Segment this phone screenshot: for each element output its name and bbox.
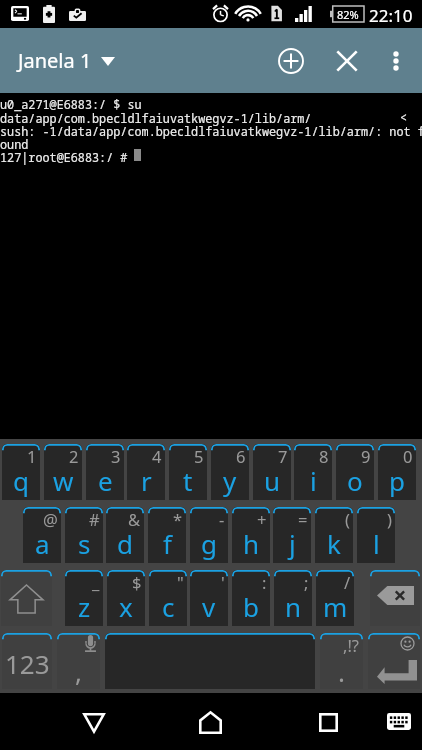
staticText: 22:10 xyxy=(369,4,413,27)
staticText: 1 xyxy=(27,445,37,467)
staticText: p xyxy=(389,463,405,498)
button[interactable]: d xyxy=(106,507,144,563)
staticText: ' xyxy=(221,571,225,593)
staticText: : xyxy=(262,571,267,593)
button[interactable]: y xyxy=(211,444,249,500)
staticText: 6 xyxy=(236,445,246,467)
button[interactable] xyxy=(370,570,420,626)
button[interactable]: w xyxy=(44,444,82,500)
button[interactable]: m xyxy=(316,570,354,626)
button[interactable]: Recents xyxy=(300,693,357,750)
button[interactable]: t xyxy=(169,444,207,500)
button[interactable]: Close window xyxy=(323,28,371,93)
staticText: ; xyxy=(304,571,309,593)
button[interactable]: q xyxy=(2,444,40,500)
button[interactable]: a xyxy=(23,507,61,563)
button[interactable]: k xyxy=(315,507,353,563)
button[interactable]: z xyxy=(65,570,103,626)
staticText: s xyxy=(78,526,91,561)
staticText: z xyxy=(78,589,91,624)
button[interactable]: More options xyxy=(376,28,416,93)
staticText: 2 xyxy=(69,445,79,467)
button[interactable]: Switch keyboard xyxy=(370,693,422,750)
staticText: n xyxy=(285,589,302,624)
button[interactable]: v xyxy=(190,570,228,626)
button[interactable]: Home xyxy=(182,693,239,750)
staticText: d xyxy=(117,526,133,561)
button[interactable]: f xyxy=(148,507,186,563)
staticText: r xyxy=(141,463,152,498)
staticText: o xyxy=(347,463,363,498)
staticText: < xyxy=(400,109,408,125)
staticText: u0_a271@E6883:/ $ su xyxy=(0,96,422,112)
button[interactable]: Back xyxy=(65,693,122,750)
button[interactable]: x xyxy=(107,570,145,626)
button[interactable]: i xyxy=(294,444,332,500)
button[interactable]: g xyxy=(190,507,228,563)
staticText: # xyxy=(89,508,100,530)
button[interactable]: Janela 1 xyxy=(18,28,115,93)
staticText: k xyxy=(327,526,341,561)
button[interactable]: b xyxy=(232,570,270,626)
button[interactable]: . xyxy=(320,633,363,689)
button[interactable]: l xyxy=(357,507,395,563)
staticText: j xyxy=(289,526,296,561)
staticText: 8 xyxy=(319,445,329,467)
button[interactable]: u0_a271@E6883:/ $ su xyxy=(0,93,422,439)
button[interactable]: s xyxy=(65,507,103,563)
staticText: g xyxy=(201,526,217,561)
staticText: 9 xyxy=(361,445,371,467)
button[interactable]: n xyxy=(274,570,312,626)
button[interactable]: p xyxy=(378,444,416,500)
button[interactable]: u xyxy=(253,444,291,500)
staticText: $ xyxy=(132,571,142,593)
button[interactable]: h xyxy=(232,507,270,563)
staticText: ) xyxy=(387,508,392,530)
staticText: t xyxy=(183,463,193,498)
button[interactable]: e xyxy=(86,444,124,500)
staticText: , xyxy=(75,654,82,689)
staticText: = xyxy=(298,508,308,530)
staticText: u xyxy=(264,463,281,498)
staticText: sush: -1/data/app/com.bpecldlfaiuvatkweg… xyxy=(0,123,422,139)
staticText: 82% xyxy=(337,7,359,22)
staticText: " xyxy=(177,571,184,593)
staticText: 5 xyxy=(194,445,204,467)
staticText: x xyxy=(119,589,133,624)
staticText: 7 xyxy=(278,445,288,467)
button[interactable]: c xyxy=(149,570,187,626)
button[interactable]: New window xyxy=(267,28,315,93)
staticText: i xyxy=(310,463,317,498)
staticText: m xyxy=(323,589,348,624)
button[interactable]: 123 xyxy=(2,633,52,689)
staticText: c xyxy=(162,589,175,624)
staticText: a xyxy=(35,526,50,561)
button[interactable] xyxy=(105,633,315,689)
staticText: * xyxy=(173,508,183,530)
staticText: 3 xyxy=(111,445,121,467)
staticText: y xyxy=(223,463,237,498)
staticText: b xyxy=(243,589,259,624)
staticText: data/app/com.bpecldlfaiuvatkwegvz-1/lib/… xyxy=(0,110,422,126)
staticText: e xyxy=(98,463,113,498)
button[interactable] xyxy=(1,570,52,626)
button[interactable]: r xyxy=(127,444,165,500)
staticText: h xyxy=(243,526,260,561)
staticText: v xyxy=(202,589,216,624)
staticText: q xyxy=(13,463,29,498)
button[interactable]: j xyxy=(273,507,311,563)
staticText: w xyxy=(53,463,74,498)
staticText: 127|root@E6883:/ # xyxy=(0,149,422,165)
staticText: ound xyxy=(0,136,422,152)
staticText: ( xyxy=(345,508,350,530)
button[interactable]: o xyxy=(336,444,374,500)
staticText: / xyxy=(344,571,351,593)
staticText: l xyxy=(373,526,380,561)
staticText: . xyxy=(338,654,345,689)
staticText: ,!? xyxy=(343,634,360,656)
staticText: _ xyxy=(92,571,100,593)
button[interactable]: , xyxy=(57,633,100,689)
button[interactable] xyxy=(368,633,420,689)
staticText: 4 xyxy=(152,445,162,467)
staticText: - xyxy=(219,508,225,530)
